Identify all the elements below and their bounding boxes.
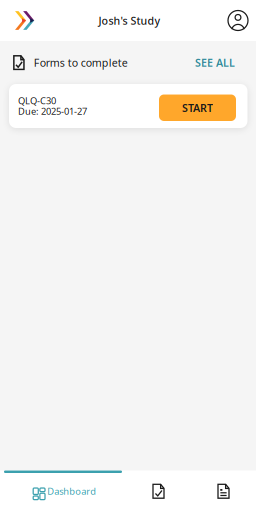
button[interactable]: START bbox=[159, 84, 236, 128]
button[interactable]: Documents bbox=[191, 470, 256, 512]
staticText: Forms to complete bbox=[34, 55, 128, 70]
staticText: SEE ALL bbox=[195, 55, 235, 70]
staticText: START bbox=[182, 101, 213, 115]
button[interactable]: Dashboard bbox=[0, 470, 126, 512]
staticText: Josh's Study bbox=[98, 13, 160, 28]
staticText: Dashboard bbox=[47, 485, 96, 497]
staticText: Due: 2025-01-27 bbox=[18, 105, 87, 117]
button[interactable]: Forms bbox=[126, 470, 191, 512]
button[interactable]: SEE ALL bbox=[195, 55, 235, 70]
button[interactable]: Account bbox=[228, 10, 248, 30]
staticText: QLQ-C30 bbox=[18, 94, 56, 107]
